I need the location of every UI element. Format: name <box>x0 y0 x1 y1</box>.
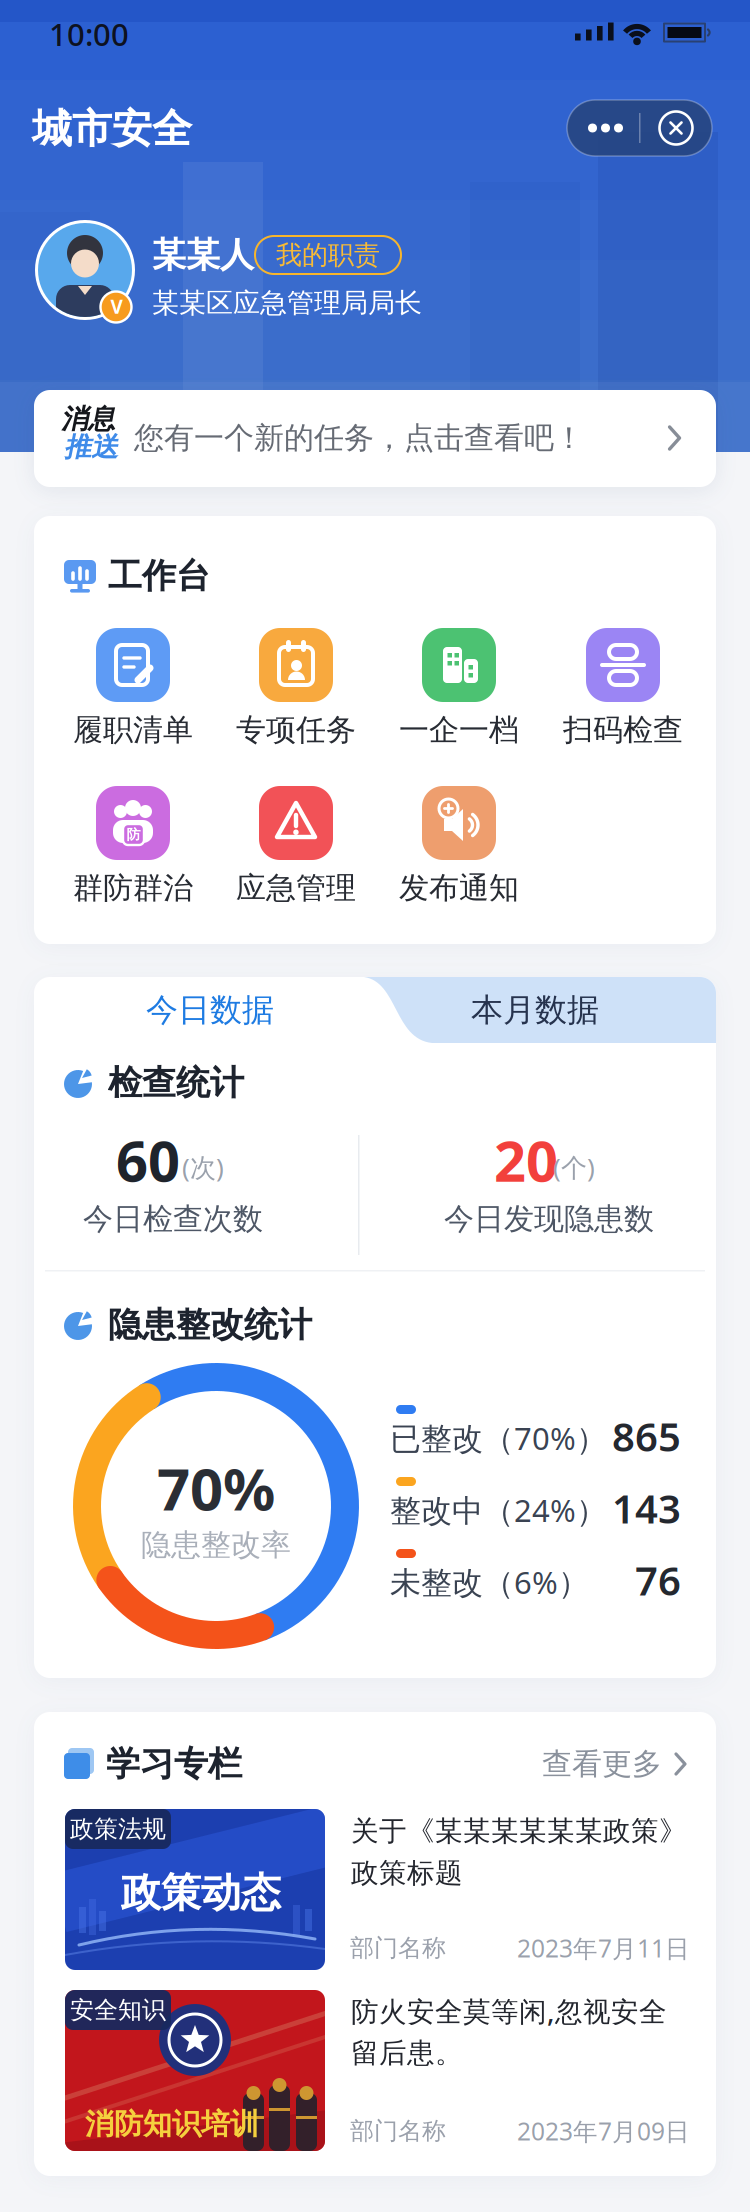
staticText: 群防群治 <box>73 870 193 906</box>
staticText: 学习专栏 <box>106 1743 242 1785</box>
button[interactable]: 履职清单 <box>58 628 208 753</box>
button[interactable]: 发布通知 <box>384 786 534 911</box>
staticText: 某某区应急管理局局长 <box>152 286 422 320</box>
staticText: 推送 <box>64 430 118 464</box>
button[interactable]: 应急管理 <box>221 786 371 911</box>
staticText: (次) <box>182 1150 224 1184</box>
button[interactable]: 消防知识培训 <box>65 1990 690 2151</box>
button[interactable]: 本月数据 <box>34 977 364 1043</box>
staticText: 今日数据 <box>146 990 274 1030</box>
staticText: 应急管理 <box>236 870 356 906</box>
staticText: 政策标题 <box>351 1856 463 1890</box>
staticText: 政策法规 <box>70 1814 166 1844</box>
staticText: 整改中（24%） <box>390 1489 607 1531</box>
staticText: 工作台 <box>108 555 210 597</box>
staticText: 消防知识培训 <box>85 2106 259 2142</box>
staticText: 部门名称 <box>350 1933 446 1963</box>
button[interactable]: 消息 <box>34 390 716 487</box>
button[interactable]: 扫码检查 <box>548 628 698 753</box>
button[interactable]: 专项任务 <box>221 628 371 753</box>
staticText: 76 <box>635 1553 681 1606</box>
staticText: 865 <box>612 1409 681 1462</box>
staticText: 10:00 <box>49 13 129 55</box>
button[interactable]: 查看更多 <box>542 1739 702 1789</box>
staticText: 城市安全 <box>32 104 192 153</box>
button[interactable]: 政策动态 <box>65 1809 690 1970</box>
staticText: 专项任务 <box>236 712 356 748</box>
staticText: 消息 <box>61 402 115 436</box>
staticText: V <box>110 294 122 319</box>
staticText: 防火安全莫等闲,忽视安全 <box>351 1993 667 2029</box>
staticText: 2023年7月11日 <box>517 1932 690 1964</box>
button[interactable]: 防 <box>58 786 208 911</box>
button[interactable]: 更多 <box>567 100 639 156</box>
staticText: 2023年7月09日 <box>517 2115 690 2147</box>
staticText: 留后患。 <box>351 2036 463 2070</box>
button[interactable]: 一企一档 <box>384 628 534 753</box>
staticText: (个) <box>553 1150 595 1184</box>
staticText: 某某人 <box>152 234 254 276</box>
staticText: 发布通知 <box>399 870 519 906</box>
staticText: 隐患整改统计 <box>108 1304 312 1346</box>
staticText: 安全知识 <box>70 1995 166 2025</box>
staticText: 您有一个新的任务，点击查看吧！ <box>134 420 584 456</box>
staticText: 今日发现隐患数 <box>444 1201 654 1237</box>
staticText: 政策动态 <box>121 1868 281 1917</box>
staticText: 检查统计 <box>108 1062 244 1104</box>
staticText: 今日检查次数 <box>83 1201 263 1237</box>
staticText: 履职清单 <box>73 712 193 748</box>
staticText: 70% <box>157 1449 275 1526</box>
staticText: 隐患整改率 <box>141 1527 291 1563</box>
staticText: 一企一档 <box>399 712 519 748</box>
button[interactable]: 关闭 <box>640 100 712 156</box>
staticText: 部门名称 <box>350 2116 446 2146</box>
button[interactable]: 我的职责 <box>255 236 401 274</box>
staticText: 本月数据 <box>471 990 599 1030</box>
staticText: 20 <box>494 1123 558 1197</box>
staticText: 查看更多 <box>542 1746 662 1782</box>
staticText: 60 <box>116 1123 180 1197</box>
staticText: 已整改（70%） <box>390 1417 607 1459</box>
button[interactable]: 今日数据 <box>34 977 386 1043</box>
staticText: 未整改（6%） <box>390 1561 589 1603</box>
staticText: 扫码检查 <box>563 712 683 748</box>
staticText: 防 <box>126 826 140 843</box>
staticText: 关于《某某某某某某政策》 <box>351 1814 687 1848</box>
staticText: 我的职责 <box>276 239 380 271</box>
staticText: 143 <box>612 1481 681 1534</box>
